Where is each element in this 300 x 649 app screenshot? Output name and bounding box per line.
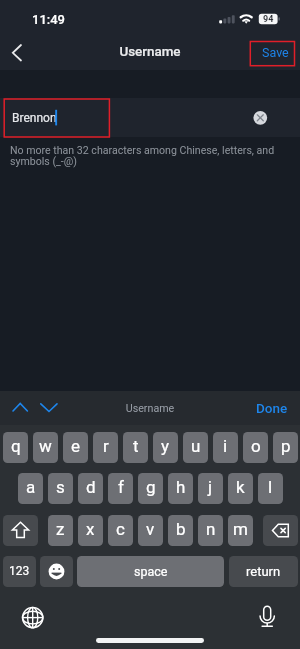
- staticText: m: [233, 519, 248, 539]
- button[interactable]: e: [63, 432, 88, 463]
- button[interactable]: q: [3, 432, 28, 463]
- button[interactable]: o: [243, 432, 268, 463]
- button[interactable]: r: [93, 432, 118, 463]
- button[interactable]: Shift: [3, 515, 38, 546]
- button[interactable]: y: [153, 432, 178, 463]
- staticText: a: [26, 477, 36, 497]
- button[interactable]: t: [123, 432, 148, 463]
- staticText: Done: [256, 400, 288, 416]
- button[interactable]: v: [138, 515, 163, 546]
- button[interactable]: p: [273, 432, 298, 463]
- staticText: t: [133, 436, 139, 456]
- staticText: u: [191, 436, 201, 456]
- button[interactable]: x: [78, 515, 103, 546]
- staticText: 94: [263, 14, 274, 25]
- button[interactable]: g: [138, 473, 163, 504]
- staticText: j: [208, 477, 213, 497]
- button[interactable]: Backspace: [263, 515, 298, 546]
- button[interactable]: Emoji: [40, 556, 73, 587]
- staticText: r: [103, 436, 109, 456]
- staticText: n: [206, 519, 216, 539]
- button[interactable]: Dictation: [255, 603, 281, 629]
- button[interactable]: f: [108, 473, 133, 504]
- staticText: l: [268, 477, 273, 497]
- button[interactable]: s: [48, 473, 73, 504]
- button[interactable]: Switch keyboard: [20, 605, 46, 631]
- button[interactable]: m: [228, 515, 253, 546]
- staticText: x: [86, 519, 95, 539]
- staticText: b: [176, 519, 186, 539]
- staticText: Save: [262, 45, 289, 60]
- button[interactable]: Previous field: [7, 391, 34, 425]
- staticText: c: [116, 519, 125, 539]
- staticText: s: [56, 477, 65, 497]
- button[interactable]: l: [258, 473, 283, 504]
- button[interactable]: space: [77, 556, 224, 587]
- button[interactable]: h: [168, 473, 193, 504]
- button[interactable]: j: [198, 473, 223, 504]
- button[interactable]: z: [48, 515, 73, 546]
- staticText: o: [251, 436, 261, 456]
- button[interactable]: Back: [3, 38, 33, 68]
- button[interactable]: b: [168, 515, 193, 546]
- staticText: h: [176, 477, 186, 497]
- button[interactable]: k: [228, 473, 253, 504]
- button[interactable]: d: [78, 473, 103, 504]
- button[interactable]: i: [213, 432, 238, 463]
- staticText: 123: [9, 564, 30, 578]
- staticText: e: [71, 436, 81, 456]
- staticText: Username: [0, 402, 300, 415]
- button[interactable]: w: [33, 432, 58, 463]
- staticText: p: [281, 436, 291, 456]
- button[interactable]: return: [229, 556, 298, 587]
- staticText: No more than 32 characters among Chinese…: [10, 144, 275, 156]
- staticText: symbols (_-@): [10, 155, 77, 167]
- staticText: space: [134, 564, 168, 579]
- button[interactable]: n: [198, 515, 223, 546]
- button[interactable]: 123: [3, 556, 36, 587]
- staticText: d: [86, 477, 96, 497]
- button[interactable]: u: [183, 432, 208, 463]
- button[interactable]: Save: [250, 41, 294, 66]
- button[interactable]: c: [108, 515, 133, 546]
- staticText: z: [56, 519, 65, 539]
- staticText: 11:49: [32, 12, 66, 27]
- button[interactable]: Done: [250, 391, 296, 425]
- staticText: g: [146, 477, 156, 497]
- staticText: return: [246, 564, 281, 579]
- staticText: w: [39, 436, 52, 456]
- staticText: k: [236, 477, 245, 497]
- button[interactable]: Next field: [35, 391, 62, 425]
- staticText: f: [118, 477, 124, 497]
- button[interactable]: a: [18, 473, 43, 504]
- staticText: Brennon: [12, 111, 57, 125]
- staticText: i: [223, 436, 228, 456]
- staticText: Username: [0, 44, 300, 60]
- staticText: y: [161, 436, 170, 456]
- staticText: q: [11, 436, 21, 456]
- staticText: v: [146, 519, 155, 539]
